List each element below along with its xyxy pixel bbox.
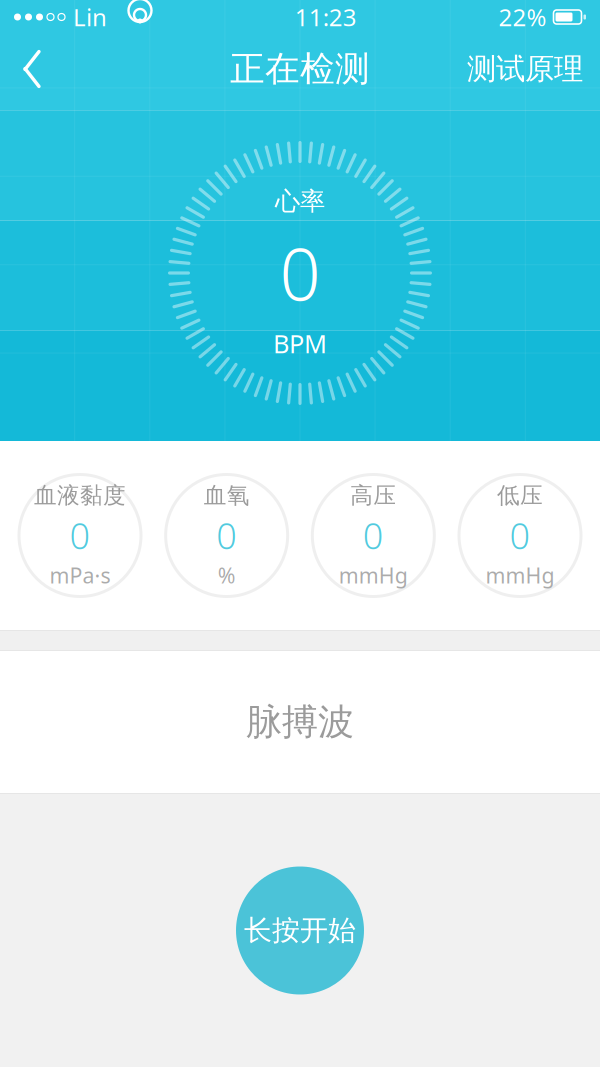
staticText: 低压 (497, 481, 543, 509)
staticText: 0 (363, 511, 384, 559)
staticText: 正在检测 (230, 48, 370, 90)
staticText: mPa·s (49, 561, 110, 589)
button[interactable]: 测试原理 (453, 41, 597, 97)
staticText: 0 (509, 511, 530, 559)
staticText: BPM (273, 326, 327, 360)
staticText: 0 (279, 225, 320, 320)
staticText: 血液黏度 (34, 481, 126, 509)
staticText: 心率 (275, 186, 325, 217)
staticText: 22% (498, 1, 546, 33)
button[interactable]: 返回 (3, 41, 61, 97)
staticText: 血氧 (204, 481, 250, 509)
staticText: Lin (73, 1, 107, 33)
staticText: 0 (216, 511, 237, 559)
staticText: mmHg (339, 561, 408, 589)
button[interactable]: 长按开始 (236, 866, 364, 994)
staticText: 脉搏波 (246, 700, 354, 744)
staticText: 0 (69, 511, 90, 559)
staticText: % (218, 561, 236, 589)
staticText: 测试原理 (467, 51, 583, 87)
staticText: mmHg (485, 561, 554, 589)
staticText: 11:23 (295, 1, 357, 33)
staticText: 长按开始 (244, 913, 356, 948)
staticText: 高压 (350, 481, 396, 509)
